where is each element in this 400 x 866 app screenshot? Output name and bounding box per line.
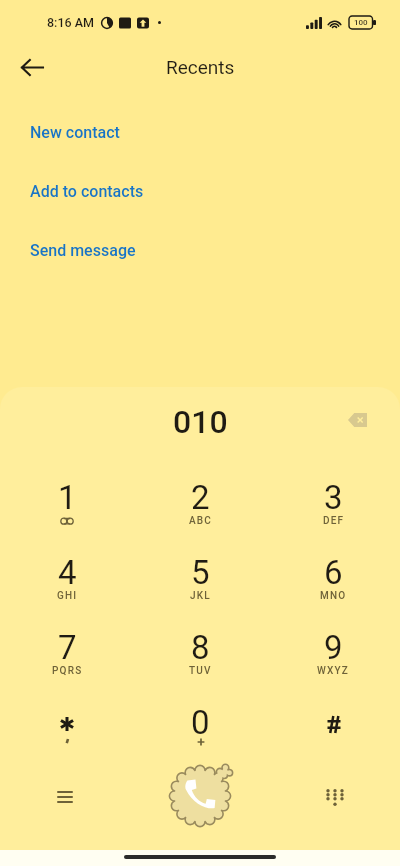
staticText: 7: [58, 628, 77, 667]
button[interactable]: [267, 678, 400, 753]
staticText: 3: [324, 478, 343, 517]
staticText: 010: [173, 403, 228, 441]
button[interactable]: Send message: [0, 232, 400, 269]
button[interactable]: 4: [0, 528, 134, 603]
button[interactable]: 9: [267, 603, 400, 678]
staticText: Send message: [30, 241, 136, 260]
staticText: DEF: [323, 515, 345, 527]
staticText: 2: [191, 478, 210, 517]
button[interactable]: Call log menu: [43, 775, 87, 819]
staticText: PQRS: [52, 665, 83, 677]
button[interactable]: 3: [267, 453, 400, 528]
staticText: 9: [324, 628, 343, 667]
staticText: Recents: [166, 56, 235, 78]
button[interactable]: Add to contacts: [0, 173, 400, 210]
staticText: JKL: [190, 590, 211, 602]
staticText: New contact: [30, 123, 120, 142]
button[interactable]: Back: [10, 45, 54, 89]
button[interactable]: New contact: [0, 114, 400, 151]
button[interactable]: 7: [0, 603, 134, 678]
button[interactable]: 8: [134, 603, 267, 678]
staticText: 1: [58, 478, 77, 517]
staticText: 4: [58, 553, 77, 592]
staticText: 8: [191, 628, 210, 667]
button[interactable]: Call: [164, 761, 236, 833]
staticText: ABC: [189, 515, 213, 527]
staticText: TUV: [189, 665, 212, 677]
button[interactable]: 1: [0, 453, 134, 528]
staticText: WXYZ: [317, 665, 350, 677]
button[interactable]: 2: [134, 453, 267, 528]
button[interactable]: Backspace: [339, 402, 375, 438]
staticText: GHI: [57, 590, 78, 602]
staticText: 0: [191, 703, 210, 742]
button[interactable]: 5: [134, 528, 267, 603]
staticText: MNO: [320, 590, 347, 602]
staticText: 6: [324, 553, 343, 592]
staticText: 8:16 AM: [47, 15, 95, 30]
staticText: 5: [191, 553, 210, 592]
button[interactable]: [0, 678, 134, 753]
staticText: Add to contacts: [30, 182, 144, 201]
button[interactable]: Dialpad: [313, 775, 357, 819]
button[interactable]: 0: [134, 678, 267, 753]
button[interactable]: 6: [267, 528, 400, 603]
staticText: 100: [354, 18, 368, 27]
